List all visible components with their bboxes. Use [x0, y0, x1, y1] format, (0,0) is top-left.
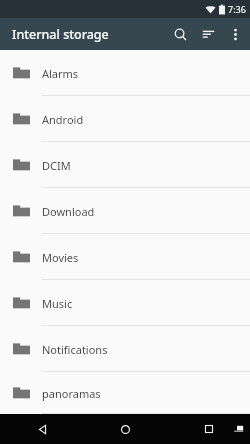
button[interactable]: Sort [194, 20, 222, 48]
button[interactable]: Notifications [0, 326, 250, 372]
staticText: Download [42, 204, 95, 219]
button[interactable]: More options [222, 21, 248, 47]
staticText: Internal storage [12, 26, 109, 43]
staticText: Music [42, 296, 73, 311]
button[interactable]: Recent apps [167, 414, 250, 444]
button[interactable]: panoramas [0, 372, 250, 414]
staticText: Notifications [42, 342, 108, 357]
button[interactable]: Music [0, 280, 250, 326]
button[interactable]: Movies [0, 234, 250, 280]
staticText: Alarms [42, 66, 79, 81]
button[interactable]: DCIM [0, 142, 250, 188]
button[interactable]: Alarms [0, 50, 250, 96]
staticText: panoramas [42, 386, 101, 401]
button[interactable]: Back [0, 414, 84, 444]
button[interactable]: Download [0, 188, 250, 234]
staticText: Android [42, 112, 84, 127]
button[interactable]: Home [84, 414, 167, 444]
staticText: DCIM [42, 158, 71, 173]
staticText: Movies [42, 250, 79, 265]
staticText: 7:36 [228, 3, 246, 15]
button[interactable]: Android [0, 96, 250, 142]
button[interactable]: Search [166, 20, 194, 48]
